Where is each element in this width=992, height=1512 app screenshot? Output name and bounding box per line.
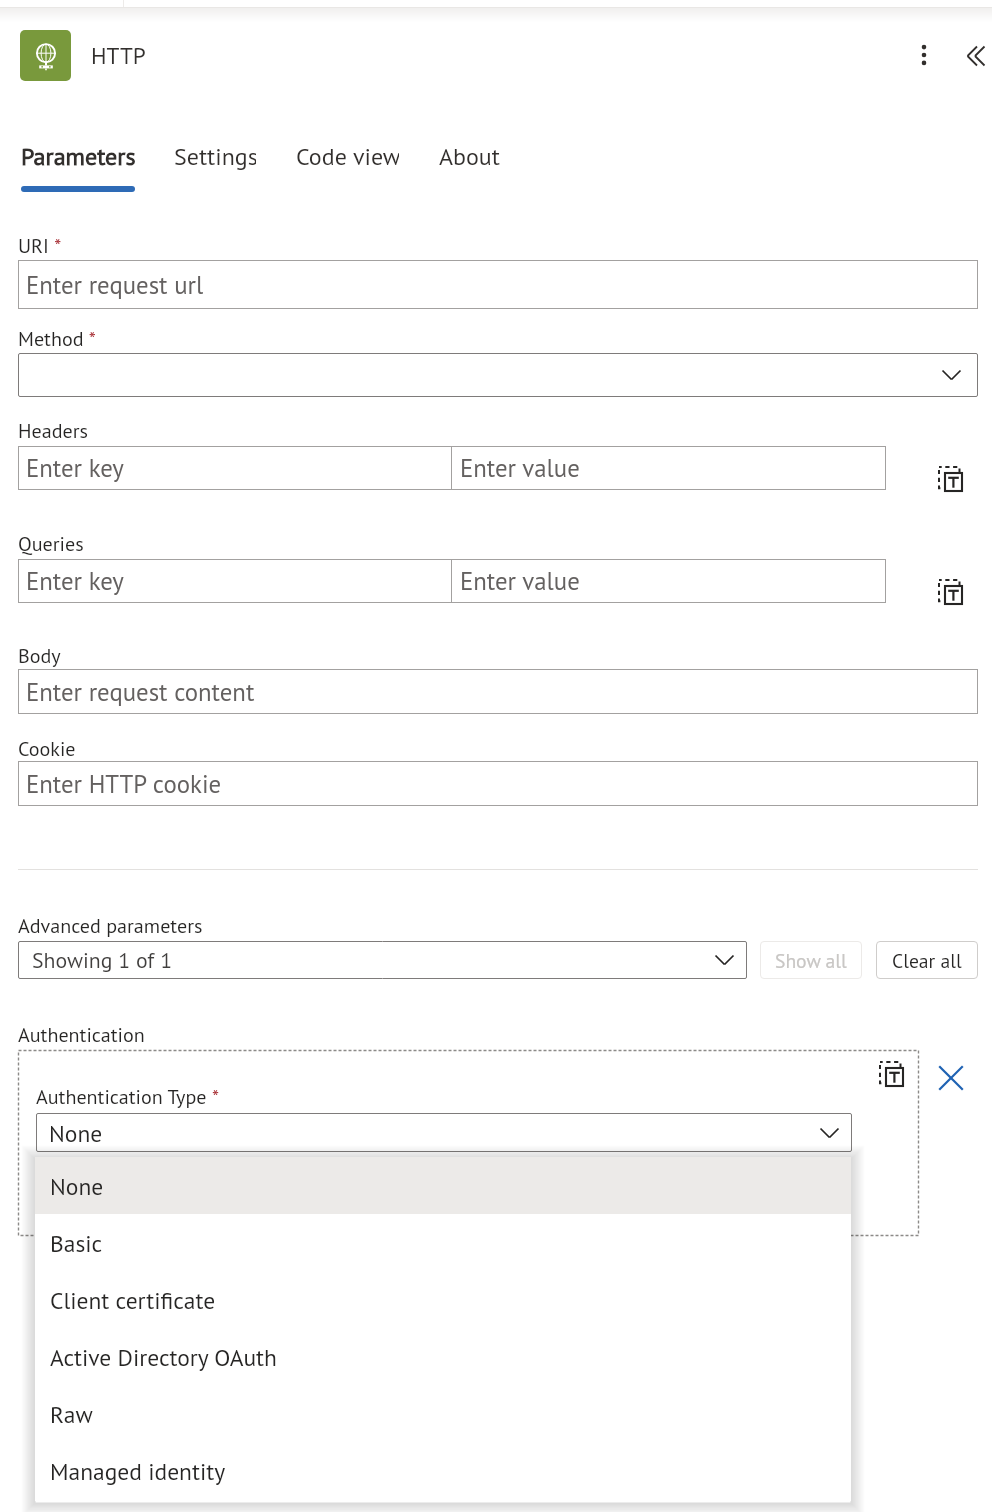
- staticText: Raw: [50, 1399, 93, 1429]
- button[interactable]: Managed identity: [35, 1442, 851, 1499]
- staticText: Authentication: [18, 1022, 145, 1048]
- button[interactable]: Basic: [35, 1214, 851, 1271]
- button[interactable]: Parameters: [21, 141, 135, 192]
- button[interactable]: Settings: [174, 141, 256, 192]
- button[interactable]: Active Directory OAuth: [35, 1328, 851, 1385]
- staticText: None: [49, 1118, 103, 1148]
- button[interactable]: Collapse panel: [956, 36, 992, 76]
- button[interactable]: Client certificate: [35, 1271, 851, 1328]
- staticText: Code view: [296, 141, 399, 172]
- staticText: Enter request url: [26, 269, 204, 301]
- button[interactable]: HTTP connector icon: [20, 30, 71, 81]
- staticText: Managed identity: [50, 1456, 226, 1486]
- button[interactable]: Enter HTTP cookie: [18, 761, 978, 806]
- button[interactable]: Enter key: [18, 559, 451, 603]
- button[interactable]: Clear all: [876, 941, 978, 979]
- staticText: Body: [18, 643, 61, 669]
- staticText: About: [439, 141, 500, 172]
- button[interactable]: Code view: [296, 141, 399, 192]
- staticText: Active Directory OAuth: [50, 1342, 277, 1372]
- staticText: Enter value: [460, 452, 580, 484]
- staticText: Enter request content: [26, 676, 255, 708]
- staticText: Advanced parameters: [18, 913, 203, 939]
- button[interactable]: Enter key: [18, 446, 451, 490]
- button[interactable]: Raw: [35, 1385, 851, 1442]
- staticText: Clear all: [892, 948, 962, 973]
- staticText: None: [50, 1171, 104, 1201]
- button[interactable]: Delete authentication: [929, 1056, 973, 1100]
- button[interactable]: Switch to text mode: [937, 578, 965, 606]
- staticText: Basic: [50, 1228, 103, 1258]
- button[interactable]: Switch to text mode: [878, 1060, 906, 1088]
- staticText: Showing 1 of 1: [32, 946, 173, 974]
- staticText: Method *: [18, 326, 96, 352]
- staticText: Settings: [174, 141, 256, 172]
- staticText: Headers: [18, 418, 88, 444]
- button[interactable]: Enter value: [452, 446, 886, 490]
- staticText: Enter HTTP cookie: [26, 768, 222, 800]
- staticText: Parameters: [21, 141, 135, 172]
- staticText: Enter key: [26, 565, 124, 597]
- staticText: Client certificate: [50, 1285, 216, 1315]
- staticText: HTTP: [91, 40, 146, 70]
- button[interactable]: About: [438, 141, 501, 192]
- button[interactable]: Enter value: [452, 559, 886, 603]
- button[interactable]: Switch to text mode: [937, 465, 965, 493]
- staticText: Enter key: [26, 452, 124, 484]
- button[interactable]: Show all: [760, 941, 862, 979]
- staticText: Authentication Type *: [36, 1084, 219, 1110]
- button[interactable]: More commands: [901, 32, 947, 78]
- staticText: Cookie: [18, 736, 76, 762]
- button[interactable]: None: [36, 1113, 852, 1152]
- staticText: Enter value: [460, 565, 580, 597]
- staticText: URI *: [18, 233, 62, 259]
- button[interactable]: [18, 353, 978, 397]
- button[interactable]: Enter request content: [18, 669, 978, 714]
- button[interactable]: Enter request url: [18, 260, 978, 309]
- button[interactable]: None: [35, 1157, 851, 1214]
- staticText: Queries: [18, 531, 84, 557]
- button[interactable]: Showing 1 of 1: [18, 941, 747, 979]
- staticText: Show all: [775, 948, 847, 973]
